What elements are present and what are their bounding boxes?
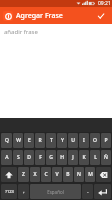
staticText: R [38,137,42,144]
button[interactable]: ?123 [1,184,17,199]
staticText: . [87,188,89,195]
staticText: N [77,171,81,178]
button[interactable]: añadir frase [0,24,112,118]
staticText: K [82,154,86,161]
staticText: H [60,154,64,161]
button[interactable]: Q [1,133,12,148]
staticText: añadir frase [4,28,38,36]
staticText: M [88,171,93,178]
button[interactable]: Y [57,133,67,148]
button[interactable]: V [52,167,62,182]
button[interactable]: Intro [94,184,111,199]
staticText: E [28,137,31,144]
button[interactable]: M [85,167,95,182]
button[interactable]: App icon [3,11,13,21]
button[interactable]: T [46,133,56,148]
button[interactable]: C [41,167,51,182]
staticText: Q [5,137,9,144]
staticText: C [44,171,48,178]
button[interactable]: I [79,133,89,148]
button[interactable]: , [18,184,29,199]
staticText: A [5,154,9,161]
button[interactable]: A [1,150,12,165]
staticText: I [83,137,85,144]
button[interactable]: Borrar [96,167,111,182]
staticText: , [23,188,25,195]
staticText: ?123 [5,189,14,194]
staticText: Z [22,171,25,178]
staticText: V [55,171,59,178]
button[interactable]: P [101,133,111,148]
staticText: U [71,137,75,144]
staticText: F [39,154,42,161]
button[interactable]: Español [30,184,81,199]
button[interactable]: X [30,167,40,182]
staticText: B [66,171,70,178]
button[interactable]: O [90,133,100,148]
staticText: 09:21 [98,0,111,7]
button[interactable]: Ñ [101,150,111,165]
button[interactable]: H [57,150,67,165]
staticText: T [50,137,53,144]
button[interactable]: Z [18,167,29,182]
staticText: J [72,154,74,161]
button[interactable]: K [79,150,89,165]
button[interactable]: B [63,167,73,182]
button[interactable]: S [13,150,23,165]
button[interactable]: N [74,167,84,182]
button[interactable]: Guardar [93,8,109,24]
button[interactable]: . [82,184,93,199]
button[interactable]: L [90,150,100,165]
staticText: L [94,154,97,161]
staticText: O [93,137,97,144]
staticText: W [16,137,21,144]
staticText: P [104,137,108,144]
button[interactable]: R [35,133,45,148]
staticText: S [17,154,20,161]
staticText: G [49,154,53,161]
button[interactable]: G [46,150,56,165]
staticText: Ñ [104,154,108,161]
staticText: Agregar Frase [16,11,93,21]
staticText: Y [61,137,64,144]
staticText: D [27,154,31,161]
button[interactable]: Mayúsculas [1,167,17,182]
button[interactable]: J [68,150,78,165]
button[interactable]: W [13,133,23,148]
button[interactable]: U [68,133,78,148]
button[interactable]: D [24,150,34,165]
staticText: Español [47,189,64,195]
button[interactable]: F [35,150,45,165]
staticText: X [33,171,37,178]
button[interactable]: E [24,133,34,148]
